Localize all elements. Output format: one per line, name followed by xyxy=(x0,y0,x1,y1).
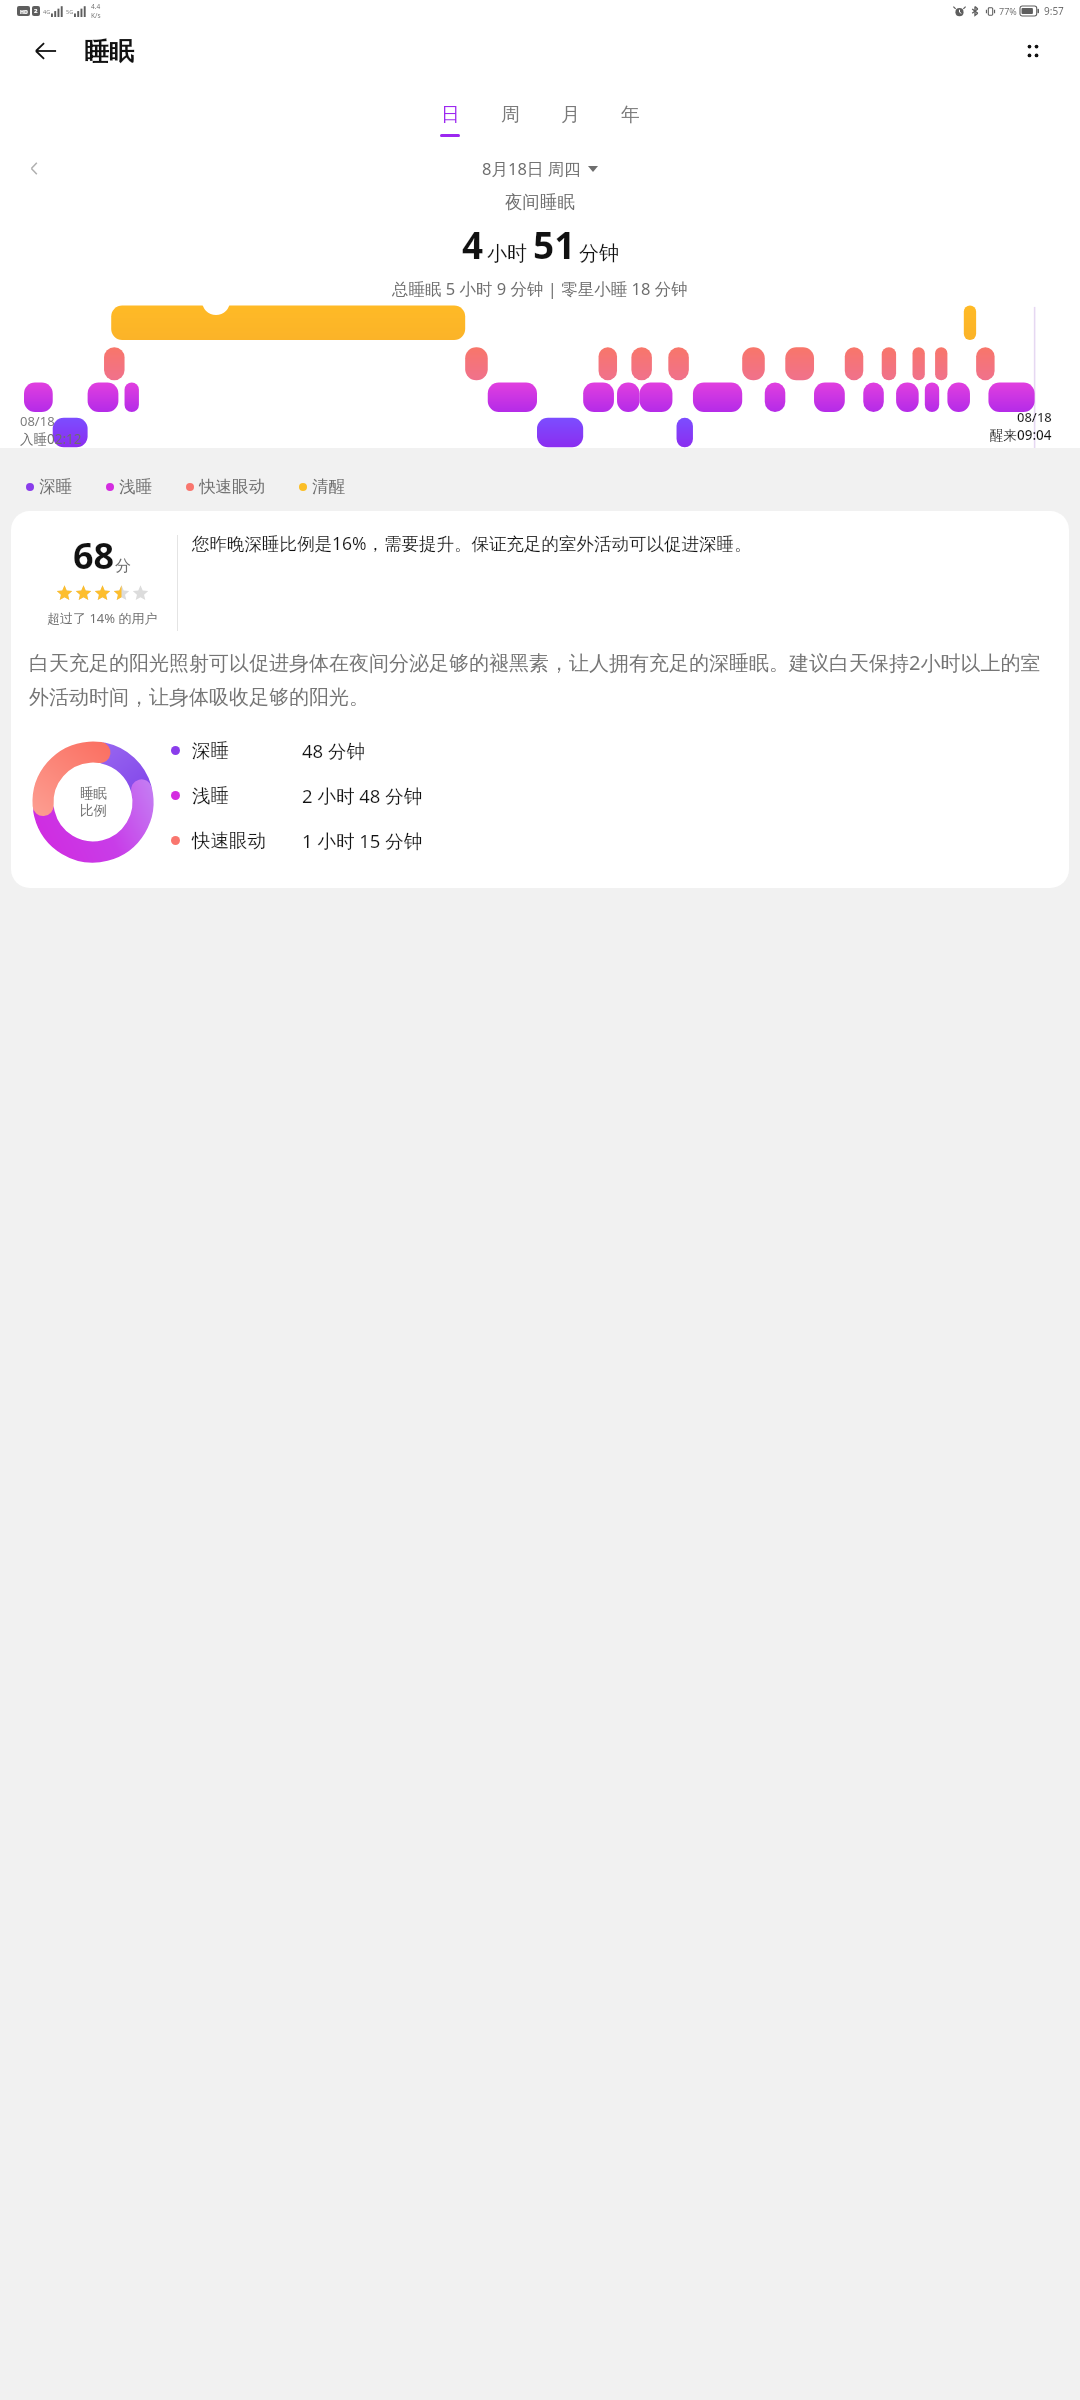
staticText: 入睡02:12 xyxy=(20,430,82,448)
button[interactable]: 深睡 xyxy=(26,476,72,497)
staticText: 深睡 xyxy=(39,476,72,497)
staticText: 08/18 xyxy=(20,412,55,430)
button[interactable]: 深睡 xyxy=(171,738,1055,763)
button[interactable]: 周 xyxy=(480,103,540,137)
staticText: 2 xyxy=(34,7,38,15)
staticText: 5G xyxy=(66,8,74,15)
staticText: 浅睡 xyxy=(119,476,152,497)
staticText: 4G xyxy=(43,8,51,15)
staticText: 醒来09:04 xyxy=(990,426,1052,444)
button[interactable]: 月 xyxy=(540,103,600,137)
staticText: 夜间睡眠 xyxy=(505,191,575,213)
staticText: 清醒 xyxy=(312,476,345,497)
button[interactable]: More options xyxy=(1012,30,1054,72)
staticText: 1 小时 15 分钟 xyxy=(302,828,1055,853)
staticText: 51 xyxy=(533,219,576,269)
button[interactable]: Scroll indicator xyxy=(202,287,230,315)
staticText: 小时 xyxy=(487,241,527,266)
staticText: 快速眼动 xyxy=(192,829,302,852)
staticText: 月 xyxy=(561,103,580,127)
staticText: 分 xyxy=(115,556,131,576)
staticText: 深睡 xyxy=(192,739,302,762)
staticText: 08/18 xyxy=(1017,408,1052,426)
staticText: 快速眼动 xyxy=(199,476,265,497)
staticText: 超过了 14% 的用户 xyxy=(47,609,158,627)
button[interactable]: 清醒 xyxy=(299,476,345,497)
staticText: 9:57 xyxy=(1044,4,1064,18)
staticText: 您昨晚深睡比例是16%，需要提升。保证充足的室外活动可以促进深睡。 xyxy=(192,531,1053,555)
staticText: 比例 xyxy=(80,802,107,819)
staticText: 4 xyxy=(462,219,484,269)
button[interactable]: 年 xyxy=(600,103,660,137)
staticText: 睡眠 xyxy=(80,785,107,802)
button[interactable]: 68 xyxy=(27,531,177,627)
staticText: 日 xyxy=(441,103,460,127)
button[interactable]: Back xyxy=(26,31,66,71)
staticText: 周 xyxy=(501,103,520,127)
button[interactable]: 快速眼动 xyxy=(186,476,265,497)
button[interactable]: 快速眼动 xyxy=(171,828,1055,853)
staticText: 白天充足的阳光照射可以促进身体在夜间分泌足够的褪黑素，让人拥有充足的深睡眠。建议… xyxy=(29,649,1051,710)
staticText: 年 xyxy=(621,103,640,127)
staticText: 8月18日 周四 xyxy=(482,157,581,180)
staticText: 总睡眠 5 小时 9 分钟 | 零星小睡 18 分钟 xyxy=(392,277,688,300)
staticText: 睡眠 xyxy=(84,36,134,67)
staticText: 68 xyxy=(73,531,115,580)
button[interactable]: 日 xyxy=(420,103,480,137)
staticText: 分钟 xyxy=(579,241,619,266)
staticText: K/s xyxy=(91,11,101,20)
button[interactable]: 浅睡 xyxy=(171,783,1055,808)
staticText: 48 分钟 xyxy=(302,738,1055,763)
staticText: 77% xyxy=(999,5,1017,17)
button[interactable]: 8月18日 周四 xyxy=(482,157,598,180)
staticText: 4.4 xyxy=(91,2,101,11)
button[interactable]: 浅睡 xyxy=(106,476,152,497)
staticText: 浅睡 xyxy=(192,784,302,807)
staticText: HD xyxy=(20,8,28,15)
staticText: 2 小时 48 分钟 xyxy=(302,783,1055,808)
button[interactable]: Previous day xyxy=(16,151,52,185)
